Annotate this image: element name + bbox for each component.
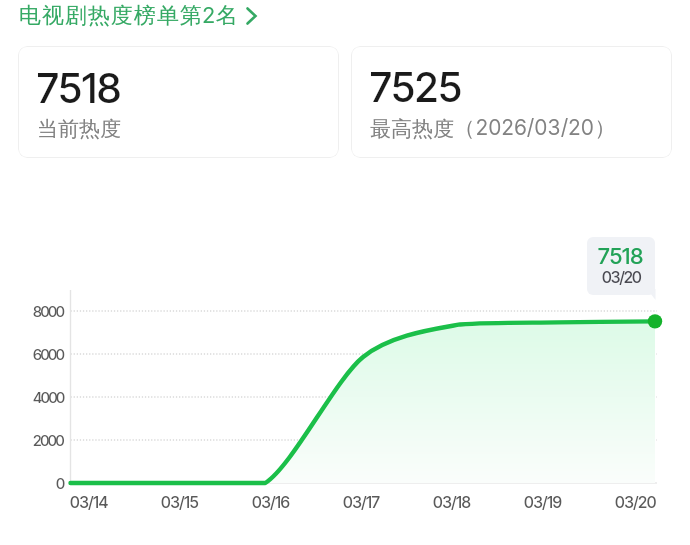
staticText: 03/14 — [70, 492, 108, 511]
other: More — [246, 7, 257, 25]
staticText: 03/16 — [252, 492, 290, 511]
staticText: （2026/03/20） — [454, 115, 617, 142]
staticText: 2000 — [33, 431, 64, 449]
staticText: 03/19 — [524, 492, 562, 511]
staticText: 03/18 — [433, 492, 471, 511]
staticText: 03/20 — [615, 492, 656, 511]
button[interactable]: 7518 — [18, 46, 339, 158]
staticText: 03/17 — [343, 492, 380, 511]
button[interactable]: 7525 — [351, 46, 672, 158]
staticText: 6000 — [33, 345, 64, 363]
staticText: 4000 — [33, 388, 64, 406]
staticText: 03/15 — [161, 492, 199, 511]
staticText: 7518 — [37, 63, 122, 113]
staticText: 7518 — [598, 243, 644, 270]
button[interactable]: 7518 — [587, 237, 655, 295]
staticText: 当前热度 — [37, 116, 121, 142]
staticText: 7525 — [370, 62, 462, 112]
staticText: 电视剧热度榜单第2名 — [19, 2, 239, 30]
staticText: 最高热度 — [370, 116, 454, 142]
staticText: 8000 — [33, 302, 64, 320]
staticText: 03/20 — [602, 267, 641, 286]
button[interactable]: 电视剧热度榜单第2名 — [19, 2, 257, 30]
staticText: 0 — [56, 474, 64, 492]
